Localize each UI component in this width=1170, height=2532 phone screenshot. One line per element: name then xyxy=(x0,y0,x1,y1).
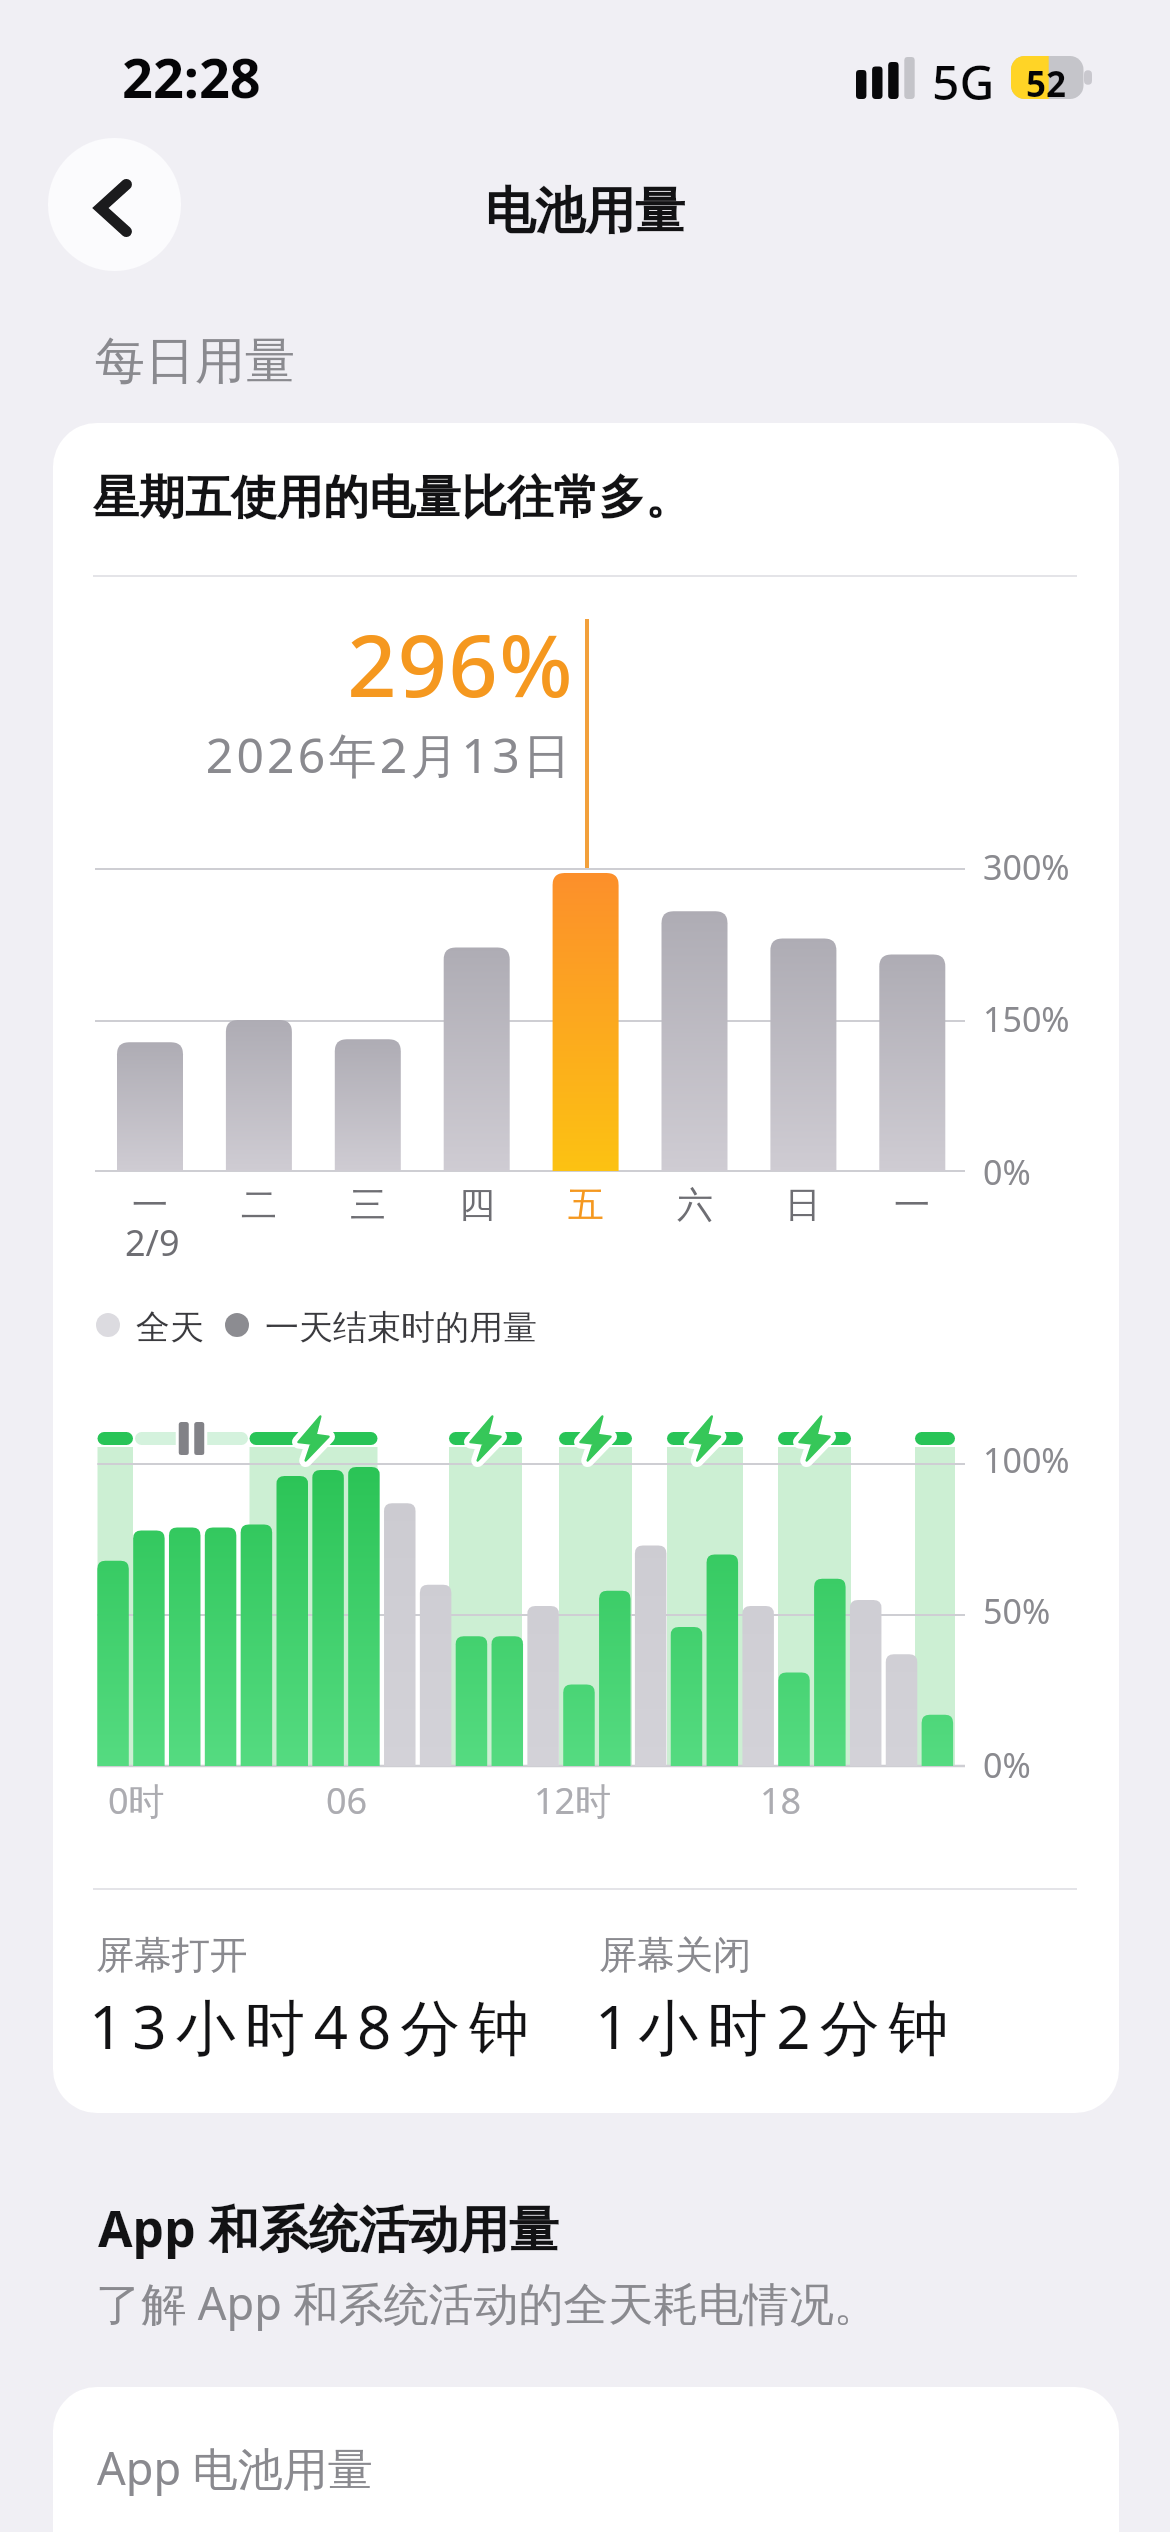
staticText: 了解 App 和系统活动的全天耗电情况。 xyxy=(96,2272,879,2333)
staticText: 星期五使用的电量比往常多。 xyxy=(93,469,691,527)
staticText: 5G xyxy=(932,49,995,114)
staticText: 0% xyxy=(983,1742,1031,1788)
staticText: 电池用量 xyxy=(485,180,685,243)
staticText: 300% xyxy=(983,844,1070,890)
button[interactable]: Back xyxy=(48,138,181,271)
staticText: App 和系统活动用量 xyxy=(98,2194,559,2262)
staticText: 1小时2分钟 xyxy=(595,1985,958,2067)
staticText: 150% xyxy=(983,996,1070,1042)
staticText: 12时 xyxy=(534,1776,612,1825)
staticText: 屏幕关闭 xyxy=(599,1931,751,1979)
staticText: 50% xyxy=(983,1588,1051,1634)
staticText: 日 xyxy=(785,1182,821,1227)
staticText: 屏幕打开 xyxy=(96,1931,248,1979)
staticText: 296% xyxy=(347,605,574,722)
staticText: 52 xyxy=(1026,60,1067,103)
staticText: 一天结束时的用量 xyxy=(265,1306,537,1349)
staticText: 二 xyxy=(241,1182,277,1227)
staticText: 06 xyxy=(326,1776,368,1825)
button[interactable]: App 电池用量 xyxy=(53,2387,1119,2532)
staticText: 0% xyxy=(983,1149,1031,1195)
staticText: 0时 xyxy=(108,1776,165,1825)
staticText: 18 xyxy=(760,1776,802,1825)
staticText: 六 xyxy=(677,1182,713,1227)
staticText: 一 xyxy=(894,1182,930,1227)
staticText: 13小时48分钟 xyxy=(89,1985,539,2067)
staticText: App 电池用量 xyxy=(97,2437,373,2498)
staticText: 100% xyxy=(983,1437,1070,1483)
staticText: 全天 xyxy=(136,1306,204,1349)
staticText: 2/9 xyxy=(125,1218,180,1267)
staticText: 2026年2月13日 xyxy=(205,722,574,788)
staticText: 五 xyxy=(568,1182,604,1227)
staticText: 每日用量 xyxy=(95,330,295,393)
staticText: 四 xyxy=(459,1182,495,1227)
staticText: 一 xyxy=(132,1182,168,1227)
staticText: 22:28 xyxy=(122,40,261,114)
staticText: 三 xyxy=(350,1182,386,1227)
